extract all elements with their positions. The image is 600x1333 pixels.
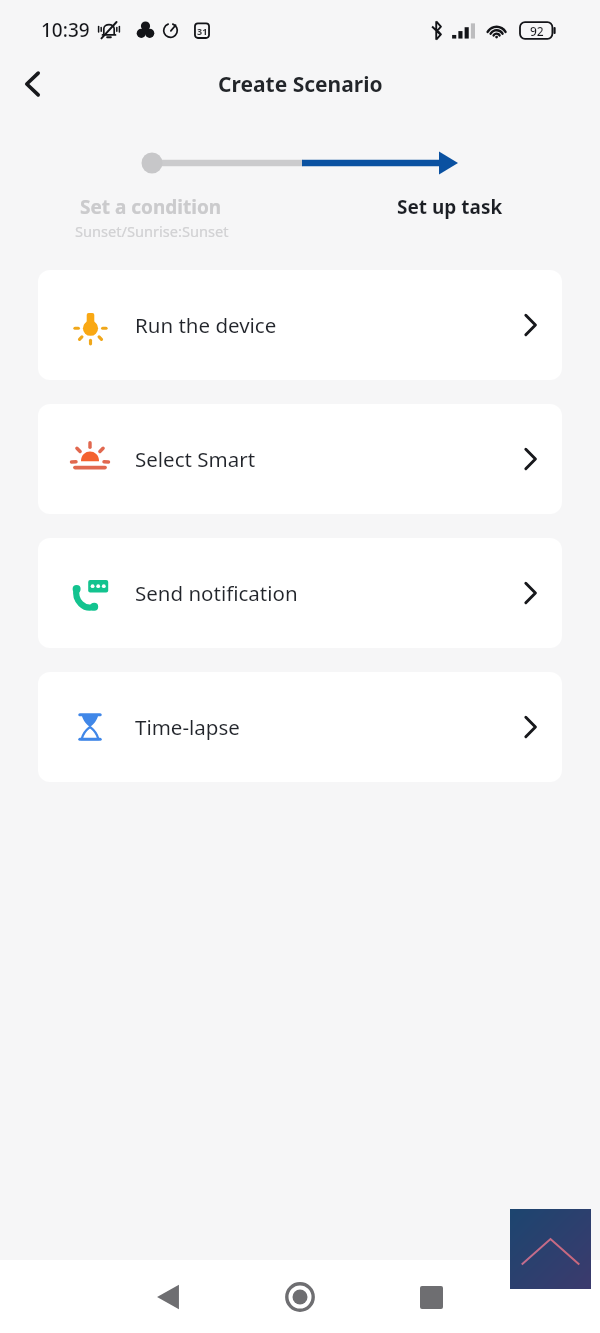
staticText: 92 xyxy=(530,23,544,39)
button[interactable]: Back xyxy=(144,1273,192,1321)
staticText: Send notification xyxy=(135,579,298,607)
button[interactable]: Back xyxy=(10,61,56,107)
button[interactable]: Run the device xyxy=(38,270,562,380)
staticText: Select Smart xyxy=(135,445,256,473)
button[interactable]: Send notification xyxy=(38,538,562,648)
staticText: Time-lapse xyxy=(135,713,240,741)
button[interactable]: Time-lapse xyxy=(38,672,562,782)
staticText: Set up task xyxy=(397,194,503,220)
staticText: 31 xyxy=(197,25,208,37)
staticText: Run the device xyxy=(135,311,277,339)
button[interactable]: Floating shortcut xyxy=(510,1209,591,1289)
staticText: Create Scenario xyxy=(218,70,383,99)
button[interactable]: Home xyxy=(276,1273,324,1321)
staticText: Set a condition xyxy=(80,194,222,220)
button[interactable]: Recents xyxy=(407,1273,455,1321)
button[interactable]: Select Smart xyxy=(38,404,562,514)
staticText: Sunset/Sunrise:Sunset xyxy=(75,221,229,241)
staticText: 10:39 xyxy=(41,17,90,43)
